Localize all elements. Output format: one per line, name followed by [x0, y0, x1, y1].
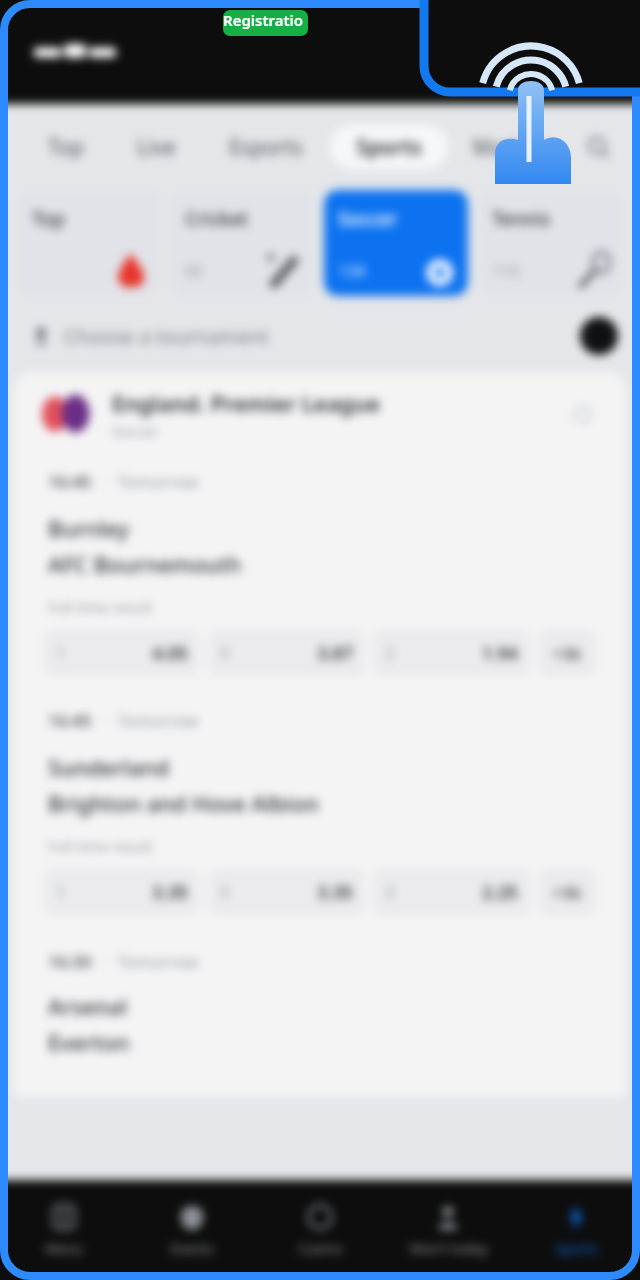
staticText: 16:45 [48, 709, 92, 732]
staticText: Soccer [338, 206, 398, 232]
staticText: Won't today [409, 1239, 488, 1258]
staticText: Menu [45, 1239, 83, 1258]
button[interactable]: Sports [330, 125, 448, 169]
staticText: AFC Bournemouth [48, 549, 242, 579]
staticText: Sunderland [48, 752, 170, 782]
button[interactable]: 1 [44, 629, 200, 677]
button[interactable]: Esports [202, 125, 330, 169]
staticText: 2.25 [482, 880, 518, 905]
button[interactable]: England. Premier League [14, 372, 626, 456]
staticText: Full time result [48, 836, 153, 856]
button[interactable] [458, 26, 628, 78]
button[interactable]: Menu [0, 1180, 128, 1280]
staticText: 16:30 [48, 950, 92, 973]
staticText: 2 [385, 642, 395, 664]
button[interactable]: Top [20, 125, 111, 169]
staticText: Top [48, 133, 84, 162]
button[interactable]: Soccer [324, 190, 468, 296]
staticText: Registration [223, 10, 308, 36]
staticText: X [220, 642, 230, 664]
staticText: Live [137, 133, 176, 162]
staticText: 3.87 [317, 641, 353, 666]
button[interactable]: More markets [538, 629, 596, 677]
button[interactable]: More [568, 399, 598, 429]
button[interactable]: Registration [223, 10, 308, 36]
staticText: Tomorrow [117, 470, 199, 493]
button[interactable]: Sports [512, 1180, 640, 1280]
button[interactable]: Events [128, 1180, 256, 1280]
staticText: Arsenal [48, 991, 128, 1021]
staticText: +36 [552, 881, 582, 904]
staticText: 16:45 [48, 470, 92, 493]
staticText: Sports [356, 133, 422, 162]
staticText: Brighton and Hove Albion [48, 788, 319, 818]
staticText: 3.35 [317, 880, 353, 905]
staticText: Casino [298, 1239, 343, 1258]
button[interactable]: 2 [373, 868, 530, 916]
staticText: Soccer [112, 421, 159, 441]
staticText: Tomorrow [117, 950, 199, 973]
staticText: Burnley [48, 513, 130, 543]
staticText: Sports [555, 1239, 598, 1258]
button[interactable]: Cricket [171, 190, 314, 296]
staticText: Full time result [48, 597, 153, 617]
button[interactable]: Filter [580, 317, 618, 355]
staticText: Markets [472, 133, 553, 162]
button[interactable]: Choose a tournament [22, 310, 580, 362]
button[interactable]: 1 [44, 868, 200, 916]
staticText: Esports [229, 133, 303, 162]
staticText: 2 [385, 881, 395, 903]
staticText: 1.94 [482, 641, 518, 666]
button[interactable]: X [208, 629, 365, 677]
button[interactable]: 16:45 [14, 695, 626, 934]
staticText: 110 [492, 260, 520, 282]
staticText: England. Premier League [112, 388, 381, 418]
staticText: Choose a tournament [64, 323, 269, 350]
button[interactable]: More markets [538, 868, 596, 916]
staticText: X [220, 881, 230, 903]
button[interactable]: Home logo [34, 41, 116, 63]
staticText: 134 [338, 260, 366, 282]
staticText: 4.05 [152, 641, 188, 666]
staticText: Events [170, 1239, 214, 1258]
button[interactable]: Markets [448, 125, 576, 169]
button[interactable]: Search [576, 125, 620, 169]
button[interactable]: 16:45 [14, 456, 626, 695]
button[interactable]: Casino [256, 1180, 384, 1280]
button[interactable]: X [208, 868, 365, 916]
button[interactable]: Tennis [478, 190, 622, 296]
staticText: Login [459, 39, 510, 65]
button[interactable]: Login [447, 31, 522, 73]
staticText: +36 [552, 642, 582, 665]
staticText: Tennis [492, 206, 551, 232]
staticText: Top [32, 206, 65, 232]
staticText: 3.35 [152, 880, 188, 905]
button[interactable]: 2 [373, 629, 530, 677]
other: Tap here [0, 0, 640, 1280]
staticText: Tomorrow [117, 709, 199, 732]
staticText: 65 [185, 260, 204, 282]
staticText: Everton [48, 1027, 130, 1057]
button[interactable]: Won't today [384, 1180, 512, 1280]
button[interactable]: Top [18, 190, 161, 296]
staticText: Cricket [185, 206, 249, 232]
button[interactable]: Live [111, 125, 202, 169]
